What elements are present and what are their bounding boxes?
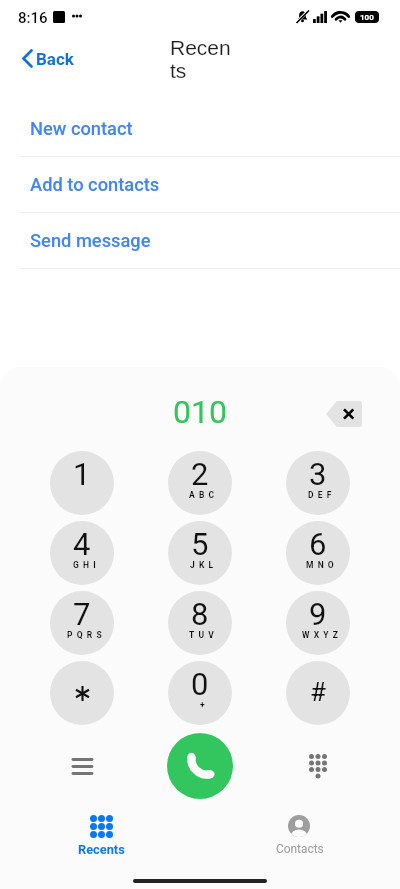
button[interactable]: 1: [50, 451, 114, 515]
button[interactable]: Dialpad: [285, 733, 351, 799]
staticText: 010: [173, 393, 227, 431]
staticText: New contact: [30, 118, 133, 139]
button[interactable]: 7: [50, 591, 114, 655]
staticText: 2: [191, 456, 209, 492]
staticText: PQRS: [67, 630, 106, 640]
staticText: Back: [36, 49, 74, 69]
button[interactable]: Backspace: [320, 397, 368, 431]
button[interactable]: Add to contacts: [0, 157, 400, 213]
staticText: MNO: [306, 560, 338, 570]
staticText: TUV: [189, 630, 219, 640]
staticText: 6: [309, 526, 327, 562]
button[interactable]: [50, 661, 114, 725]
staticText: 5: [191, 526, 209, 562]
staticText: 100: [360, 13, 374, 22]
staticText: 0: [191, 666, 209, 702]
staticText: ABC: [189, 490, 219, 500]
staticText: Contacts: [276, 842, 324, 856]
button[interactable]: Contacts: [260, 806, 340, 862]
button[interactable]: 4: [50, 521, 114, 585]
button[interactable]: #: [286, 661, 350, 725]
staticText: ts: [170, 59, 187, 82]
button[interactable]: 6: [286, 521, 350, 585]
button[interactable]: Call: [167, 733, 233, 799]
button[interactable]: Menu: [49, 733, 115, 799]
button[interactable]: New contact: [0, 101, 400, 157]
staticText: Recents: [78, 842, 125, 857]
button[interactable]: Send message: [0, 213, 400, 269]
staticText: 1: [73, 456, 91, 492]
staticText: 4: [73, 526, 91, 562]
button[interactable]: 2: [168, 451, 232, 515]
button[interactable]: 5: [168, 521, 232, 585]
staticText: DEF: [308, 490, 336, 500]
button[interactable]: 8: [168, 591, 232, 655]
button[interactable]: Back: [15, 46, 79, 74]
staticText: WXYZ: [302, 630, 343, 640]
staticText: 8: [191, 596, 209, 632]
staticText: #: [310, 677, 327, 707]
staticText: 3: [309, 456, 327, 492]
button[interactable]: 9: [286, 591, 350, 655]
staticText: 8:16: [18, 9, 48, 27]
staticText: 7: [73, 596, 91, 632]
staticText: Send message: [30, 230, 151, 251]
staticText: 9: [309, 596, 327, 632]
staticText: +: [200, 700, 209, 710]
button[interactable]: Recents: [61, 806, 141, 862]
staticText: Add to contacts: [30, 174, 160, 195]
button[interactable]: 0: [168, 661, 232, 725]
staticText: GHI: [73, 560, 100, 570]
staticText: JKL: [190, 560, 218, 570]
button[interactable]: 3: [286, 451, 350, 515]
staticText: Recen: [170, 36, 231, 59]
